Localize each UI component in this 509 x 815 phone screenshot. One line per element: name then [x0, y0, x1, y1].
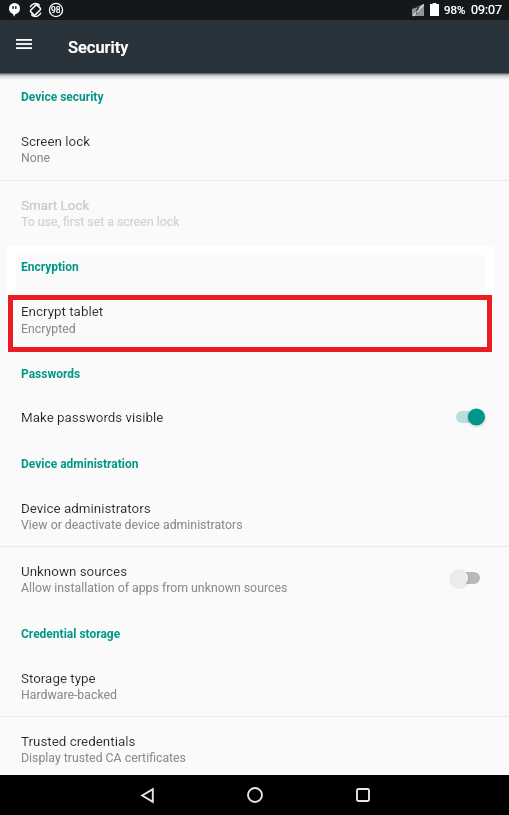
- staticText: Display trusted CA certificates: [21, 751, 186, 765]
- button[interactable]: Open navigation drawer: [8, 29, 39, 59]
- staticText: Encryption: [21, 260, 79, 274]
- staticText: Storage type: [21, 671, 96, 687]
- staticText: Trusted credentials: [21, 734, 136, 750]
- button[interactable]: Back: [117, 775, 177, 815]
- staticText: Unknown sources: [21, 564, 128, 580]
- staticText: Hardware-backed: [21, 688, 117, 702]
- button[interactable]: [0, 288, 509, 351]
- staticText: Credential storage: [21, 627, 121, 641]
- staticText: View or deactivate device administrators: [21, 518, 243, 532]
- staticText: Make passwords visible: [21, 410, 164, 426]
- staticText: Device administration: [21, 457, 139, 471]
- button[interactable]: [0, 181, 509, 244]
- button[interactable]: [0, 547, 509, 610]
- staticText: 98: [51, 5, 61, 15]
- button[interactable]: Recent apps: [333, 775, 393, 815]
- staticText: Encrypt tablet: [21, 304, 104, 320]
- button[interactable]: [0, 117, 509, 181]
- staticText: Smart Lock: [21, 198, 90, 214]
- staticText: Security: [68, 38, 129, 57]
- staticText: None: [21, 151, 51, 165]
- staticText: Device security: [21, 90, 104, 104]
- button[interactable]: [0, 484, 509, 547]
- button[interactable]: Switch on: [456, 405, 486, 429]
- staticText: Allow installation of apps from unknown …: [21, 581, 288, 595]
- button[interactable]: [0, 717, 509, 775]
- staticText: Passwords: [21, 367, 81, 381]
- staticText: Encrypted: [21, 322, 76, 336]
- button[interactable]: Home: [225, 775, 285, 815]
- button[interactable]: [0, 394, 509, 441]
- staticText: Screen lock: [21, 134, 90, 150]
- staticText: 09:07: [471, 2, 503, 17]
- staticText: Device administrators: [21, 501, 151, 517]
- button[interactable]: [0, 654, 509, 717]
- staticText: ?: [414, 4, 420, 16]
- staticText: To use, first set a screen lock: [21, 215, 180, 229]
- staticText: 98%: [444, 3, 466, 16]
- button[interactable]: Switch off: [451, 566, 481, 590]
